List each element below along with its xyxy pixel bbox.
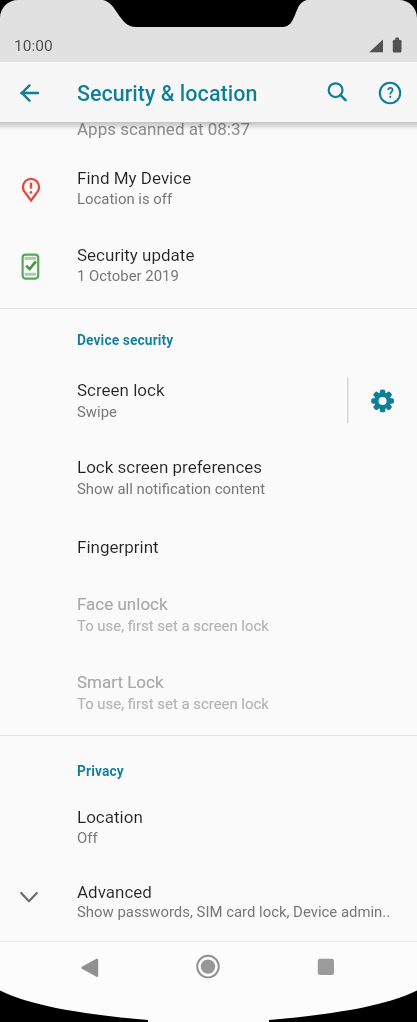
staticText: Smart Lock xyxy=(77,672,164,692)
staticText: Fingerprint xyxy=(77,537,159,557)
staticText: Off xyxy=(77,829,98,846)
staticText: Location is off xyxy=(77,190,173,207)
staticText: To use, first set a screen lock xyxy=(77,617,269,634)
staticText: Security update xyxy=(77,245,195,265)
staticText: Face unlock xyxy=(77,594,168,614)
staticText: ? xyxy=(387,85,394,101)
staticText: To use, first set a screen lock xyxy=(77,695,269,712)
staticText: Show passwords, SIM card lock, Device ad… xyxy=(77,903,391,920)
staticText: Lock screen preferences xyxy=(77,457,263,477)
staticText: Device security xyxy=(77,332,174,348)
staticText: Privacy xyxy=(77,763,124,779)
staticText: 10:00 xyxy=(14,37,53,55)
staticText: Location xyxy=(77,807,143,827)
staticText: Screen lock xyxy=(77,380,165,400)
staticText: 1 October 2019 xyxy=(77,267,179,284)
staticText: Apps scanned at 08:37 xyxy=(77,119,251,139)
staticText: Security & location xyxy=(77,81,258,106)
staticText: Find My Device xyxy=(77,168,192,188)
staticText: Swipe xyxy=(77,403,117,420)
staticText: Advanced xyxy=(77,882,152,902)
staticText: Show all notification content xyxy=(77,480,266,497)
